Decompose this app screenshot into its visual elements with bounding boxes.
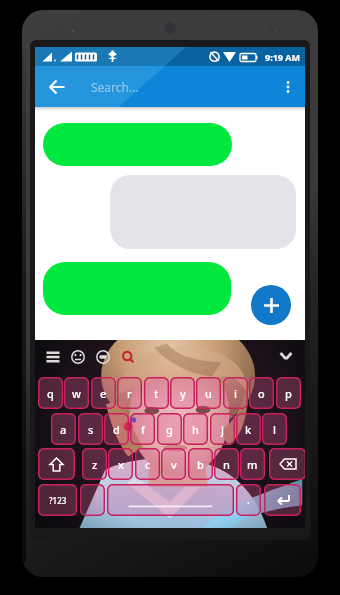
staticText: s xyxy=(88,422,94,437)
staticText: c xyxy=(145,457,151,472)
staticText: r xyxy=(127,386,132,401)
button[interactable]: Menu xyxy=(40,344,65,369)
staticText: a xyxy=(60,422,67,437)
button[interactable]: Emoji xyxy=(65,344,90,369)
button[interactable]: Add xyxy=(251,285,291,325)
button[interactable]: d xyxy=(104,413,129,445)
staticText: b xyxy=(197,457,204,472)
button[interactable]: u xyxy=(196,377,221,409)
button[interactable]: x xyxy=(108,448,133,480)
staticText: j xyxy=(221,422,224,437)
button[interactable]: j xyxy=(210,413,235,445)
button[interactable] xyxy=(80,484,105,516)
button[interactable]: l xyxy=(262,413,287,445)
staticText: v xyxy=(171,457,177,472)
button[interactable]: a xyxy=(51,413,76,445)
staticText: h xyxy=(192,422,199,437)
staticText: 9:19 AM xyxy=(265,51,301,63)
button[interactable]: f xyxy=(130,413,155,445)
staticText: e xyxy=(100,386,107,401)
staticText: l xyxy=(273,422,276,437)
button[interactable]: Back xyxy=(43,73,71,101)
staticText: ?123 xyxy=(49,495,67,506)
button[interactable]: Enter xyxy=(264,484,301,516)
button[interactable]: Search xyxy=(115,344,140,369)
staticText: k xyxy=(245,422,252,437)
button[interactable]: h xyxy=(183,413,208,445)
button[interactable]: v xyxy=(161,448,186,480)
button[interactable] xyxy=(43,262,231,315)
button[interactable]: i xyxy=(223,377,248,409)
staticText: Search... xyxy=(91,79,139,95)
staticText: o xyxy=(258,386,265,401)
button[interactable]: g xyxy=(157,413,182,445)
button[interactable]: q xyxy=(38,377,63,409)
button[interactable]: w xyxy=(64,377,89,409)
button[interactable]: Shift xyxy=(38,448,75,480)
button[interactable]: b xyxy=(188,448,213,480)
button[interactable]: p xyxy=(276,377,301,409)
staticText: i xyxy=(234,386,237,401)
button[interactable]: Backspace xyxy=(269,448,305,480)
button[interactable]: Hide keyboard xyxy=(274,344,298,368)
button[interactable]: t xyxy=(144,377,169,409)
button[interactable]: y xyxy=(170,377,195,409)
staticText: f xyxy=(141,422,145,437)
button[interactable]: . xyxy=(236,484,261,516)
staticText: n xyxy=(223,457,230,472)
staticText: t xyxy=(154,386,159,401)
staticText: w xyxy=(72,386,81,401)
button[interactable]: z xyxy=(82,448,107,480)
staticText: p xyxy=(285,386,292,401)
staticText: . xyxy=(247,493,250,507)
button[interactable] xyxy=(43,123,232,166)
staticText: u xyxy=(205,386,212,401)
staticText: q xyxy=(47,386,54,401)
button[interactable]: e xyxy=(91,377,116,409)
button[interactable]: r xyxy=(117,377,142,409)
button[interactable]: ?123 xyxy=(38,484,77,516)
staticText: z xyxy=(92,457,98,472)
staticText: x xyxy=(118,457,124,472)
button[interactable]: k xyxy=(236,413,261,445)
button[interactable]: Stickers xyxy=(90,344,115,369)
button[interactable]: Space xyxy=(107,484,234,516)
staticText: g xyxy=(166,422,173,437)
button[interactable] xyxy=(110,175,296,249)
button[interactable]: o xyxy=(249,377,274,409)
button[interactable]: n xyxy=(214,448,239,480)
staticText: m xyxy=(247,457,258,472)
button[interactable]: c xyxy=(135,448,160,480)
staticText: d xyxy=(113,422,120,437)
button[interactable]: m xyxy=(240,448,265,480)
button[interactable]: s xyxy=(78,413,103,445)
button[interactable]: More options xyxy=(274,73,302,101)
staticText: y xyxy=(180,386,186,401)
